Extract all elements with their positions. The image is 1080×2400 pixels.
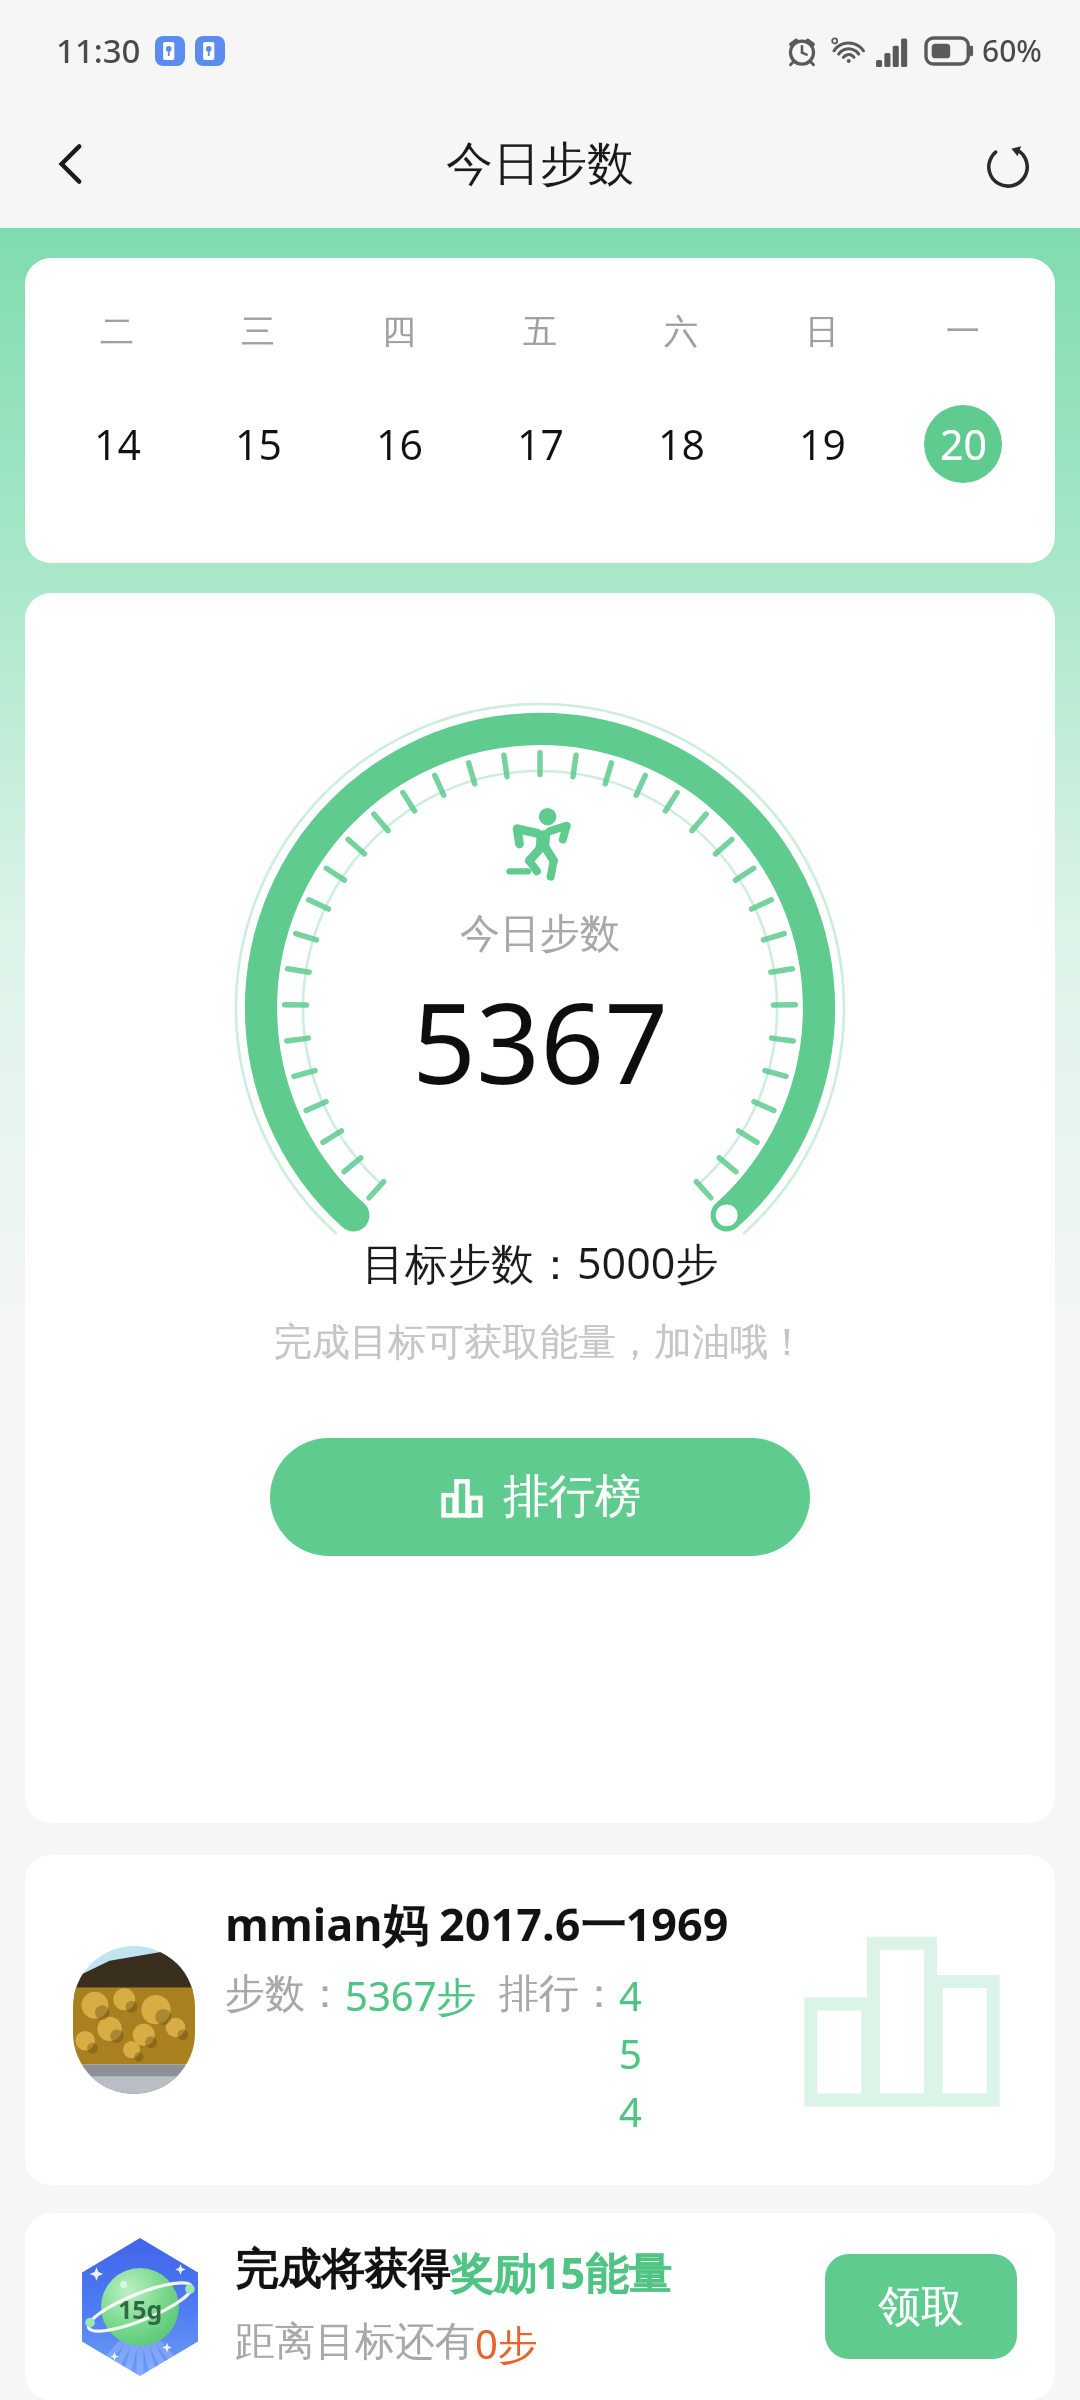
staticText: 二 xyxy=(100,310,134,353)
button[interactable]: Back xyxy=(26,118,118,210)
staticText: 排行： xyxy=(499,1968,619,2018)
staticText: 距离目标还有 xyxy=(235,2316,475,2366)
staticText: 0步 xyxy=(475,2316,538,2371)
button[interactable]: 二 xyxy=(47,258,187,563)
staticText: 18 xyxy=(658,416,705,472)
staticText: 奖励15能量 xyxy=(450,2243,672,2302)
staticText: 日 xyxy=(805,310,839,353)
button[interactable]: mmian妈 2017.6一1969 xyxy=(25,1855,1055,2185)
staticText: 60% xyxy=(982,30,1042,71)
staticText: 领取 xyxy=(878,2280,964,2334)
staticText: 5367 xyxy=(412,964,669,1117)
staticText: 17 xyxy=(517,416,564,472)
staticText: 454 xyxy=(619,1968,649,2138)
staticText: 排行榜 xyxy=(503,1468,641,1526)
button[interactable]: 六 xyxy=(610,258,751,563)
button[interactable]: 五 xyxy=(469,258,610,563)
staticText: 步数： xyxy=(225,1968,345,2018)
staticText: 六 xyxy=(664,310,698,353)
button[interactable]: 三 xyxy=(187,258,328,563)
button[interactable]: 领取 xyxy=(825,2254,1017,2359)
staticText: 11:30 xyxy=(56,28,141,73)
button[interactable]: 一 xyxy=(892,258,1033,563)
staticText: 14 xyxy=(94,416,141,472)
staticText: 四 xyxy=(382,310,416,353)
staticText: 今日步数 xyxy=(460,908,620,958)
staticText: 15g xyxy=(118,2292,163,2326)
staticText: 完成目标可获取能量，加油哦！ xyxy=(274,1318,806,1366)
button[interactable]: 四 xyxy=(328,258,469,563)
staticText: 5367步 xyxy=(345,1968,477,2023)
staticText: 16 xyxy=(376,416,423,472)
button[interactable]: 排行榜 xyxy=(270,1438,810,1556)
staticText: mmian妈 2017.6一1969 xyxy=(225,1893,729,1954)
staticText: 一 xyxy=(946,310,980,353)
staticText: 20 xyxy=(940,416,987,472)
staticText: 完成将获得 xyxy=(235,2243,450,2297)
staticText: 五 xyxy=(523,310,557,353)
staticText: 15 xyxy=(235,416,282,472)
staticText: 三 xyxy=(241,310,275,353)
staticText: 目标步数：5000步 xyxy=(362,1233,719,1292)
staticText: 19 xyxy=(799,416,846,472)
button[interactable]: 日 xyxy=(751,258,892,563)
staticText: 今日步数 xyxy=(446,135,634,194)
button[interactable]: Share xyxy=(962,118,1054,210)
